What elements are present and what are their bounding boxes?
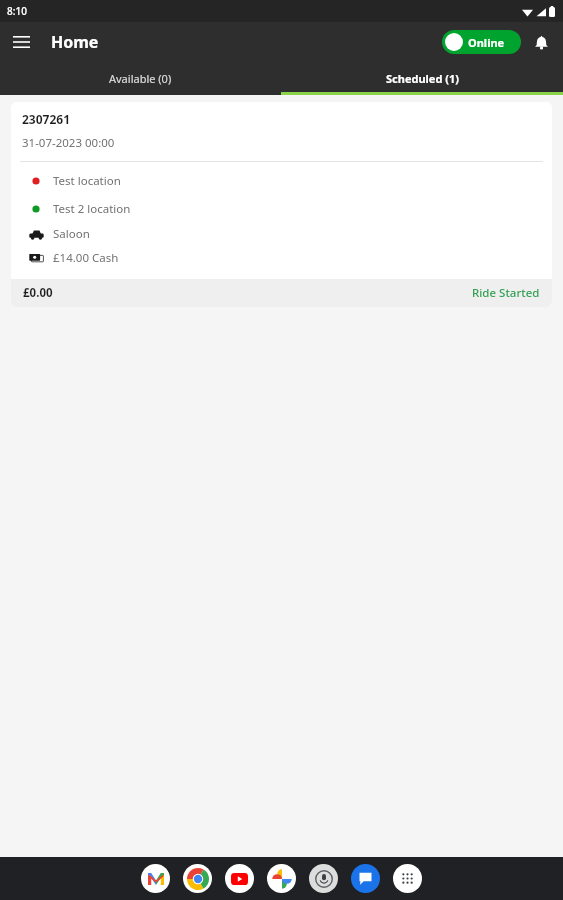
button[interactable]: Google Photos	[267, 864, 296, 893]
button[interactable]: Gmail	[141, 864, 170, 893]
staticText: Online	[468, 35, 505, 50]
staticText: 2307261	[22, 111, 71, 127]
button[interactable]: YouTube	[225, 864, 254, 893]
button[interactable]: Notifications	[527, 28, 555, 56]
staticText: Available (0)	[109, 71, 172, 86]
button[interactable]: Open navigation menu	[8, 29, 34, 55]
staticText: £0.00	[23, 285, 53, 301]
staticText: Test 2 location	[53, 201, 131, 217]
staticText: Home	[51, 31, 99, 53]
staticText: £14.00 Cash	[53, 250, 119, 266]
staticText: Test location	[53, 173, 121, 189]
staticText: Saloon	[53, 226, 90, 242]
staticText: Ride Started	[472, 285, 540, 301]
button[interactable]: All apps	[393, 864, 422, 893]
button[interactable]: Messages	[351, 864, 380, 893]
button[interactable]: Podcasts	[309, 864, 338, 893]
button[interactable]: Chrome	[183, 864, 212, 893]
button[interactable]: Online	[442, 30, 521, 54]
staticText: Scheduled (1)	[386, 71, 459, 86]
staticText: 31-07-2023 00:00	[22, 135, 115, 151]
staticText: 8:10	[7, 4, 27, 18]
button[interactable]: 2307261	[11, 102, 552, 307]
button[interactable]: Scheduled (1)	[281, 62, 563, 95]
button[interactable]: Available (0)	[0, 62, 281, 95]
